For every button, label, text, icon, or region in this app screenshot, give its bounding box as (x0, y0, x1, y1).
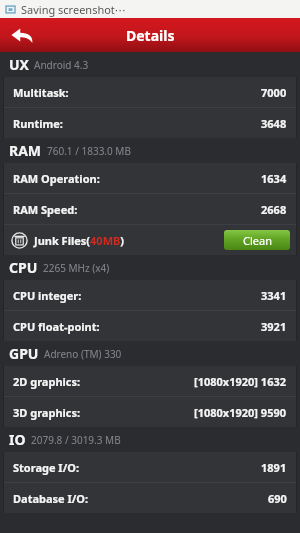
staticText: Storage I/O: (13, 460, 80, 475)
staticText: 3921 (261, 319, 287, 334)
staticText: Details (126, 26, 175, 45)
staticText: 760.1 / 1833.0 MB (47, 144, 131, 158)
button[interactable]: 3D graphics: (4, 397, 296, 427)
staticText: 2D graphics: (13, 374, 81, 389)
staticText: Saving screenshot⋯ (21, 2, 126, 17)
staticText: 3648 (261, 116, 287, 131)
staticText: IO (9, 430, 26, 449)
button[interactable]: Runtime: (4, 108, 296, 138)
staticText: 2265 MHz (x4) (43, 261, 110, 275)
button[interactable]: RAM Speed: (4, 194, 296, 224)
button[interactable]: Storage I/O: (4, 452, 296, 482)
staticText: Android 4.3 (34, 58, 89, 72)
staticText: CPU (9, 258, 38, 277)
button[interactable]: CPU float-point: (4, 311, 296, 341)
staticText: Database I/O: (13, 491, 89, 506)
staticText: 1634 (261, 171, 287, 186)
staticText: Junk Files(40MB) (34, 233, 125, 248)
staticText: CPU float-point: (13, 319, 100, 334)
button[interactable]: Back (0, 18, 44, 52)
button[interactable]: CPU integer: (4, 280, 296, 310)
staticText: 1891 (261, 460, 287, 475)
staticText: 3D graphics: (13, 405, 81, 420)
staticText: 3341 (261, 288, 287, 303)
staticText: RAM Speed: (13, 202, 78, 217)
staticText: Multitask: (13, 85, 69, 100)
staticText: 2079.8 / 3019.3 MB (31, 433, 121, 447)
button[interactable]: Multitask: (4, 77, 296, 107)
staticText: 690 (268, 491, 287, 506)
staticText: 7000 (261, 85, 287, 100)
button[interactable]: Clean (224, 230, 290, 250)
staticText: RAM (9, 141, 42, 160)
staticText: Adreno (TM) 330 (44, 347, 122, 361)
staticText: [1080x1920] 1632 (194, 374, 287, 389)
staticText: GPU (9, 344, 39, 363)
staticText: 2668 (261, 202, 287, 217)
staticText: CPU integer: (13, 288, 82, 303)
staticText: UX (9, 55, 29, 74)
button[interactable]: RAM Operation: (4, 163, 296, 193)
button[interactable]: Database I/O: (4, 483, 296, 513)
staticText: [1080x1920] 9590 (194, 405, 287, 420)
other: Junk files (11, 232, 28, 249)
staticText: Runtime: (13, 116, 63, 131)
staticText: RAM Operation: (13, 171, 100, 186)
staticText: Clean (243, 233, 272, 248)
button[interactable]: 2D graphics: (4, 366, 296, 396)
